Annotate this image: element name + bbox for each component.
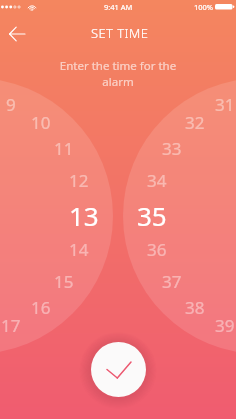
staticText: Enter the time for the alarm bbox=[44, 58, 192, 89]
staticText: 37 bbox=[162, 270, 182, 293]
staticText: 35 bbox=[137, 198, 167, 233]
button[interactable]: Confirm bbox=[91, 342, 146, 397]
staticText: 17 bbox=[1, 314, 21, 337]
staticText: 36 bbox=[147, 238, 167, 261]
staticText: 10 bbox=[31, 111, 51, 134]
staticText: 31 bbox=[215, 93, 235, 116]
staticText: 12 bbox=[69, 169, 89, 192]
staticText: 39 bbox=[215, 314, 235, 337]
staticText: 38 bbox=[185, 296, 205, 319]
staticText: 16 bbox=[31, 296, 51, 319]
button[interactable]: Back bbox=[4, 21, 30, 47]
staticText: 9 bbox=[6, 93, 16, 116]
staticText: 9:41 AM bbox=[104, 2, 133, 12]
staticText: 34 bbox=[147, 169, 167, 192]
staticText: 13 bbox=[69, 198, 99, 233]
staticText: 32 bbox=[185, 111, 205, 134]
staticText: SET TIME bbox=[91, 24, 149, 42]
staticText: 14 bbox=[69, 238, 89, 261]
staticText: 100% bbox=[194, 2, 214, 12]
staticText: 15 bbox=[54, 270, 74, 293]
staticText: 11 bbox=[54, 137, 74, 160]
staticText: 33 bbox=[162, 137, 182, 160]
